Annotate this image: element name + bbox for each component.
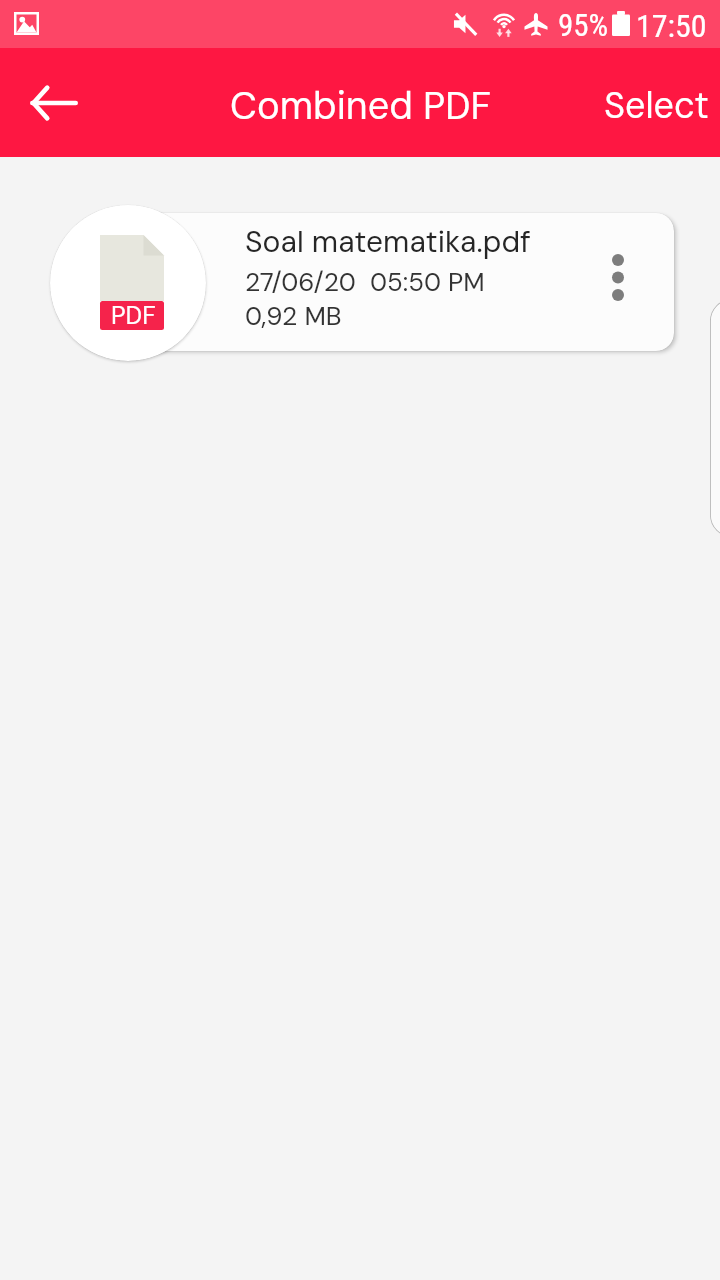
staticText: 17:50 — [636, 7, 707, 45]
staticText: Combined PDF — [230, 81, 492, 130]
staticText: PDF — [111, 299, 156, 332]
staticText: Soal matematika.pdf — [245, 222, 531, 261]
button[interactable]: Back — [8, 57, 100, 149]
other: Screenshot captured — [14, 12, 39, 35]
staticText: 0,92 MB — [245, 299, 342, 333]
staticText: 27/06/20 05:50 PM — [245, 265, 485, 299]
button[interactable]: More options — [584, 217, 652, 337]
staticText: Select — [604, 82, 709, 129]
button[interactable]: Select — [590, 57, 720, 148]
staticText: 95% — [558, 7, 609, 43]
button[interactable]: Soal matematika.pdf — [100, 213, 674, 351]
